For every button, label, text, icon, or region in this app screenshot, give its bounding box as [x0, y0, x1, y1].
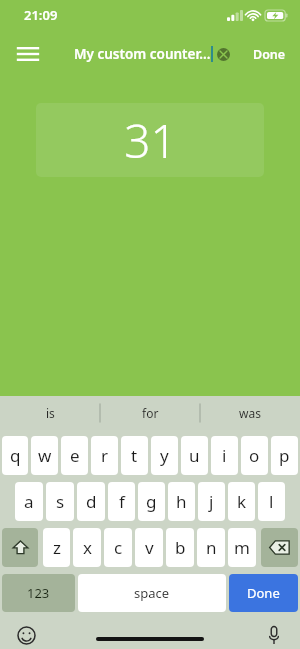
button[interactable]: y	[151, 436, 178, 475]
staticText: v	[145, 536, 154, 559]
staticText: t	[131, 444, 138, 467]
staticText: i	[222, 444, 227, 467]
button[interactable]: k	[228, 482, 255, 521]
button[interactable]: f	[108, 482, 135, 521]
staticText: x	[83, 536, 92, 559]
button[interactable]: space	[78, 574, 226, 612]
button[interactable]: e	[61, 436, 88, 475]
staticText: k	[237, 490, 247, 513]
button[interactable]: s	[46, 482, 74, 521]
button[interactable]: for	[100, 396, 200, 430]
button[interactable]: i	[211, 436, 238, 475]
button[interactable]: b	[166, 528, 194, 567]
staticText: f	[119, 490, 125, 513]
button[interactable]: h	[168, 482, 195, 521]
button[interactable]: was	[200, 396, 300, 430]
staticText: was	[239, 405, 261, 421]
button[interactable]: Backspace	[261, 528, 298, 567]
staticText: 21:09	[24, 6, 58, 24]
button[interactable]: n	[197, 528, 225, 567]
button[interactable]: Shift	[2, 528, 38, 567]
staticText: e	[70, 444, 80, 467]
staticText: b	[175, 536, 186, 559]
staticText: w	[38, 444, 52, 467]
button[interactable]: m	[228, 528, 256, 567]
button[interactable]: r	[91, 436, 118, 475]
button[interactable]: g	[138, 482, 165, 521]
staticText: l	[269, 490, 274, 513]
staticText: r	[101, 444, 109, 467]
staticText: 31	[124, 109, 177, 172]
button[interactable]: Voice input	[261, 622, 287, 648]
staticText: c	[114, 536, 123, 559]
button[interactable]: 123	[2, 574, 75, 612]
staticText: Done	[253, 46, 286, 63]
button[interactable]: q	[2, 436, 28, 475]
staticText: m	[234, 536, 250, 559]
button[interactable]: p	[271, 436, 298, 475]
staticText: s	[56, 490, 65, 513]
button[interactable]: l	[258, 482, 285, 521]
staticText: 123	[27, 584, 50, 602]
button[interactable]: d	[77, 482, 105, 521]
staticText: a	[24, 490, 34, 513]
staticText: y	[160, 444, 169, 467]
staticText: h	[176, 490, 187, 513]
staticText: z	[53, 536, 61, 559]
button[interactable]: t	[121, 436, 148, 475]
button[interactable]: a	[15, 482, 43, 521]
button[interactable]: x	[73, 528, 101, 567]
staticText: n	[206, 536, 217, 559]
staticText: j	[209, 490, 214, 513]
staticText: o	[249, 444, 260, 467]
button[interactable]: v	[135, 528, 163, 567]
button[interactable]: w	[31, 436, 58, 475]
button[interactable]: Done	[253, 46, 286, 63]
button[interactable]: Clear text	[217, 48, 230, 61]
button[interactable]: c	[104, 528, 132, 567]
button[interactable]: u	[181, 436, 208, 475]
staticText: for	[142, 405, 159, 421]
button[interactable]: 31	[36, 103, 264, 177]
staticText: u	[189, 444, 200, 467]
button[interactable]: Menu	[8, 34, 48, 74]
button[interactable]: j	[198, 482, 225, 521]
staticText: q	[10, 444, 21, 467]
button[interactable]: o	[241, 436, 268, 475]
staticText: Done	[247, 584, 280, 602]
button[interactable]: Done	[229, 574, 298, 612]
staticText: d	[86, 490, 97, 513]
button[interactable]: Emoji	[13, 622, 39, 648]
staticText: p	[279, 444, 290, 467]
staticText: is	[46, 405, 55, 421]
button[interactable]: z	[43, 528, 70, 567]
staticText: space	[134, 584, 170, 602]
staticText: g	[146, 490, 157, 513]
button[interactable]: is	[0, 396, 100, 430]
staticText: My custom counter...	[74, 45, 211, 63]
